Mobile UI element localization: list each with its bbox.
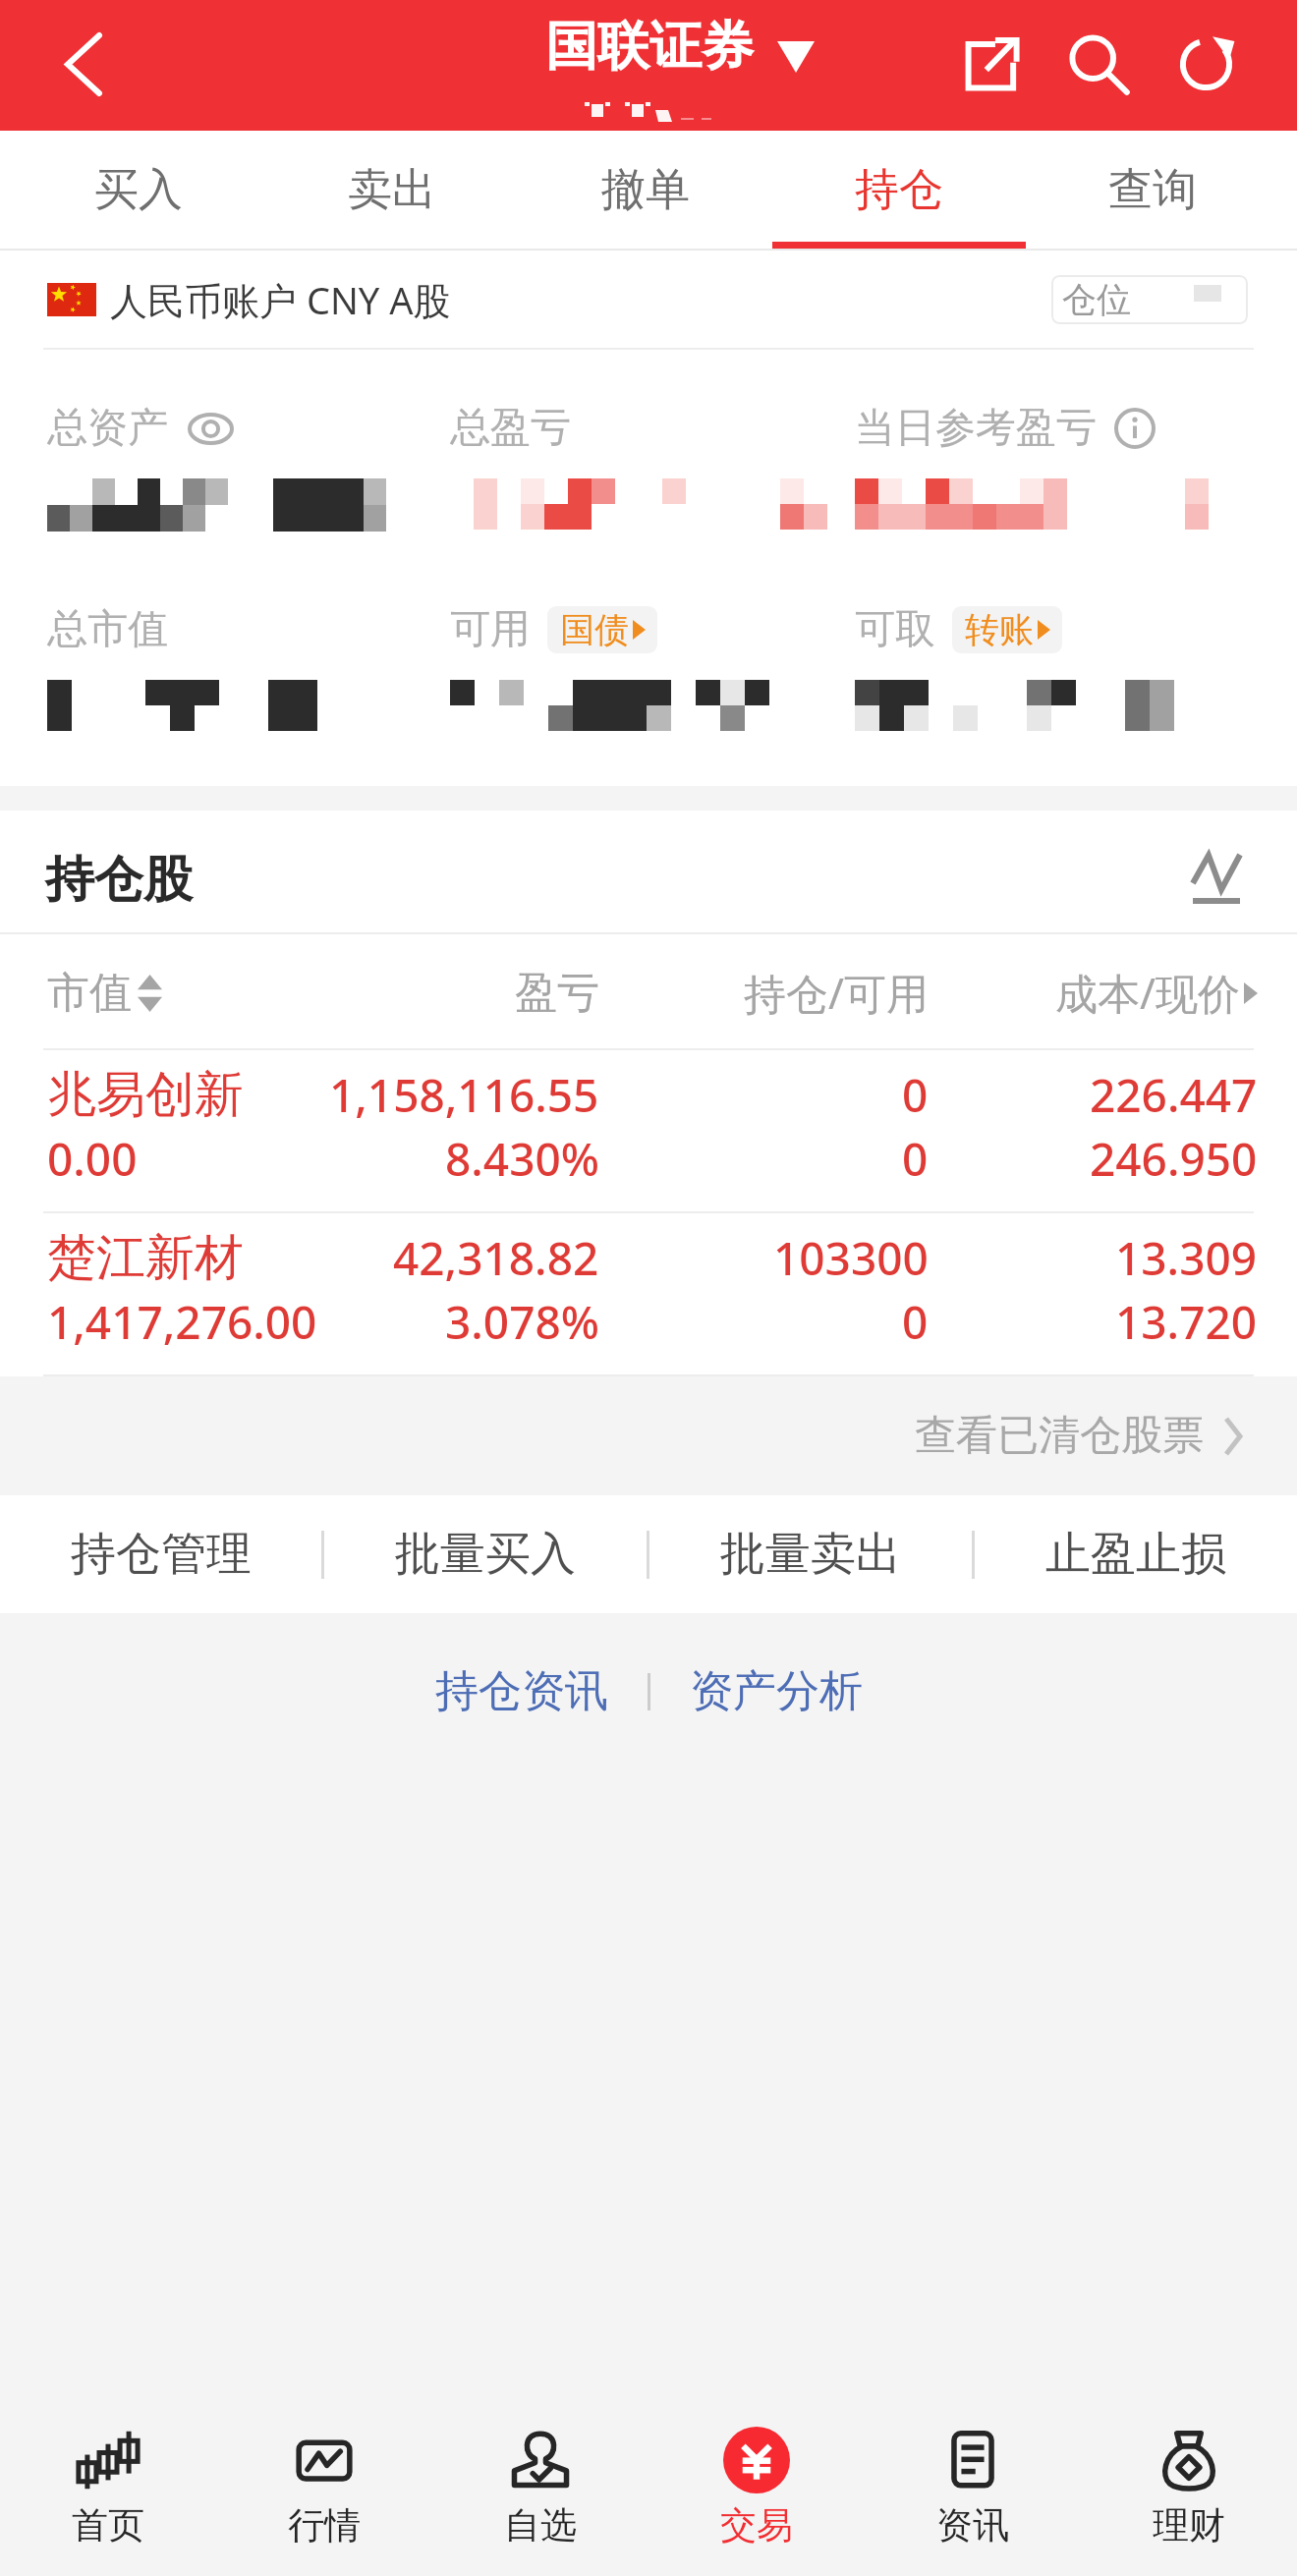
- staticText: 市值: [47, 967, 132, 1020]
- button[interactable]: 人民币账户 CNY A股: [0, 251, 1297, 348]
- button[interactable]: 持仓: [772, 131, 1026, 249]
- button[interactable]: 交易: [648, 2389, 865, 2576]
- staticText: 持仓股: [45, 849, 193, 911]
- button[interactable]: 卖出: [265, 131, 519, 249]
- staticText: 理财: [1153, 2502, 1225, 2548]
- staticText: 资产分析: [690, 1664, 863, 1718]
- staticText: 行情: [288, 2502, 361, 2548]
- button[interactable]: 自选: [432, 2389, 648, 2576]
- staticText: 0.00: [47, 1128, 138, 1190]
- staticText: 持仓管理: [71, 1526, 252, 1583]
- staticText: 0: [902, 1128, 929, 1190]
- staticText: 3.078%: [445, 1291, 599, 1353]
- staticText: 批量买入: [395, 1526, 576, 1583]
- staticText: 查看已清仓股票: [915, 1410, 1204, 1462]
- staticText: 可取: [855, 604, 935, 655]
- button[interactable]: Share: [942, 15, 1041, 113]
- staticText: 持仓: [855, 162, 943, 218]
- button[interactable]: 资讯: [865, 2389, 1081, 2576]
- staticText: 买入: [94, 162, 183, 218]
- staticText: 转账: [965, 608, 1034, 651]
- button[interactable]: 理财: [1081, 2389, 1297, 2576]
- staticText: 当日参考盈亏: [855, 403, 1097, 454]
- staticText: 撤单: [601, 162, 690, 218]
- staticText: 可用: [450, 604, 531, 655]
- staticText: 持仓/可用: [599, 964, 929, 1022]
- staticText: 246.950: [1090, 1128, 1258, 1190]
- button[interactable]: 资产分析: [650, 1651, 889, 1732]
- button[interactable]: 批量卖出: [649, 1495, 972, 1613]
- staticText: 止盈止损: [1045, 1526, 1226, 1583]
- button[interactable]: 查询: [1026, 131, 1279, 249]
- staticText: 8.430%: [445, 1128, 599, 1190]
- button[interactable]: 查看已清仓股票: [0, 1376, 1297, 1495]
- button[interactable]: 持仓管理: [0, 1495, 321, 1613]
- staticText: 0: [902, 1291, 929, 1353]
- staticText: 资讯: [936, 2502, 1009, 2548]
- staticText: 13.720: [1115, 1291, 1258, 1353]
- button[interactable]: Back: [32, 13, 135, 115]
- button[interactable]: 仓位: [1051, 275, 1248, 324]
- staticText: 总资产: [47, 403, 168, 454]
- button[interactable]: 首页: [0, 2389, 216, 2576]
- staticText: 首页: [72, 2502, 144, 2548]
- staticText: 1,417,276.00: [47, 1291, 317, 1353]
- button[interactable]: 批量买入: [324, 1495, 647, 1613]
- staticText: 人民币账户 CNY A股: [110, 274, 451, 325]
- button[interactable]: 转账: [965, 606, 1050, 653]
- button[interactable]: 撤单: [519, 131, 772, 249]
- staticText: 成本/现价: [1055, 964, 1240, 1022]
- button[interactable]: 兆易创新: [0, 1050, 1297, 1213]
- staticText: 总盈亏: [450, 403, 571, 454]
- button[interactable]: Chart: [1167, 829, 1266, 927]
- staticText: 103300: [773, 1227, 929, 1289]
- staticText: 批量卖出: [720, 1526, 901, 1583]
- staticText: 自选: [504, 2502, 577, 2548]
- button[interactable]: 买入: [11, 131, 265, 249]
- staticText: 0: [902, 1064, 929, 1126]
- staticText: 查询: [1108, 162, 1197, 218]
- staticText: 盈亏: [515, 967, 599, 1020]
- button[interactable]: 楚江新材: [0, 1213, 1297, 1376]
- button[interactable]: 止盈止损: [975, 1495, 1297, 1613]
- button[interactable]: 持仓资讯: [409, 1651, 648, 1732]
- button[interactable]: 国债: [560, 606, 646, 653]
- button[interactable]: 国联证券: [545, 14, 815, 80]
- staticText: 国联证券: [545, 14, 754, 80]
- staticText: 持仓资讯: [435, 1664, 608, 1718]
- button[interactable]: Search: [1049, 15, 1148, 113]
- staticText: 总市值: [47, 604, 168, 655]
- staticText: 仓位: [1062, 278, 1131, 321]
- staticText: 13.309: [1115, 1227, 1258, 1289]
- staticText: 国债: [560, 608, 629, 651]
- staticText: 交易: [720, 2502, 793, 2548]
- staticText: 卖出: [348, 162, 436, 218]
- button[interactable]: 行情: [216, 2389, 432, 2576]
- staticText: 楚江新材: [47, 1227, 244, 1289]
- staticText: 226.447: [1090, 1064, 1258, 1126]
- staticText: 42,318.82: [393, 1227, 599, 1289]
- staticText: 1,158,116.55: [329, 1064, 599, 1126]
- staticText: 兆易创新: [47, 1064, 244, 1126]
- button[interactable]: Refresh: [1156, 15, 1255, 113]
